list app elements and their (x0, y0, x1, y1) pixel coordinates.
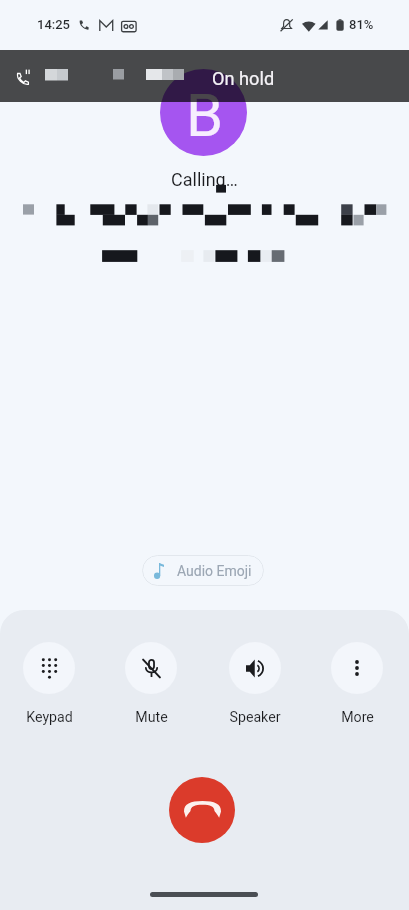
button[interactable]: Keypad (9, 642, 89, 726)
staticText: Calling… (171, 169, 238, 190)
staticText: B (186, 81, 224, 151)
staticText: On hold (212, 68, 275, 89)
staticText: Mute (135, 709, 168, 726)
button[interactable]: On hold (0, 50, 409, 102)
button[interactable]: Audio Emoji (142, 555, 264, 586)
staticText: Audio Emoji (177, 563, 252, 579)
staticText: 81% (349, 17, 374, 32)
button[interactable]: End call (169, 777, 235, 843)
staticText: Speaker (229, 709, 281, 726)
button[interactable]: Mute (111, 642, 191, 726)
staticText: More (341, 709, 374, 726)
staticText: 14:25 (37, 17, 71, 32)
staticText: Keypad (26, 709, 73, 726)
button[interactable]: More (317, 642, 397, 726)
button[interactable]: Speaker (215, 642, 295, 726)
